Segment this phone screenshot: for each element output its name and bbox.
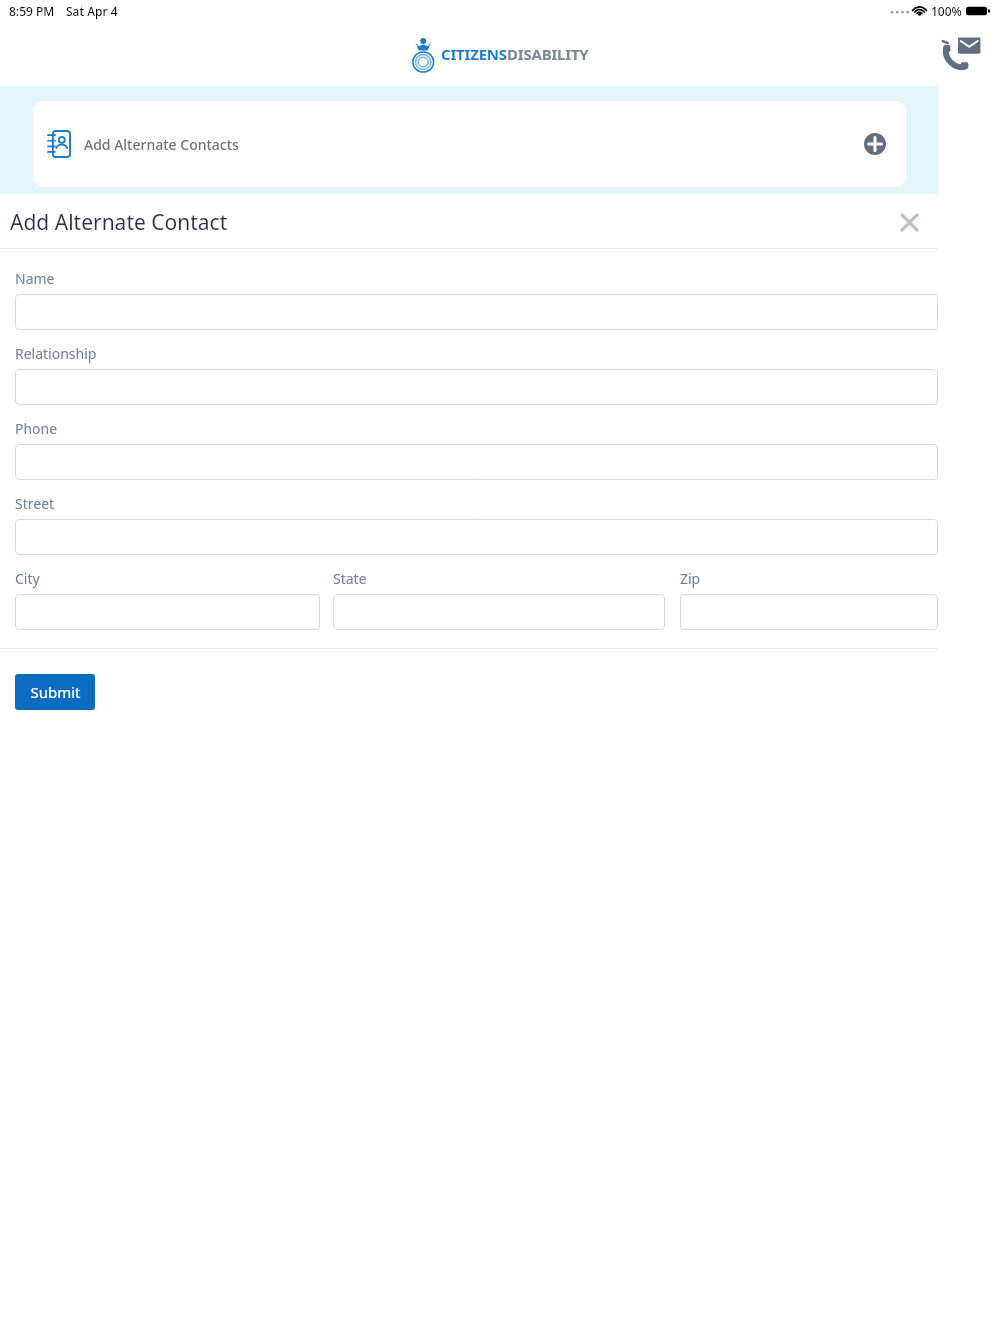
staticText: 8:59 PM: [9, 3, 55, 19]
button[interactable]: [15, 369, 938, 405]
staticText: Zip: [680, 569, 701, 588]
staticText: DISABILITY: [507, 44, 589, 64]
button[interactable]: Close: [892, 205, 926, 239]
button[interactable]: [15, 444, 938, 480]
staticText: Sat Apr 4: [66, 3, 118, 19]
staticText: Add Alternate Contact: [10, 208, 228, 237]
button[interactable]: Contact us: [938, 30, 986, 78]
staticText: Submit: [30, 682, 81, 702]
staticText: CITIZENS: [441, 44, 507, 64]
staticText: State: [333, 569, 367, 588]
button[interactable]: Add alternate contact: [858, 127, 892, 161]
staticText: Phone: [15, 419, 58, 438]
staticText: 100%: [931, 3, 962, 19]
button[interactable]: [15, 594, 320, 630]
staticText: Street: [15, 494, 55, 513]
button[interactable]: [15, 519, 938, 555]
button[interactable]: Add Alternate Contacts: [32, 100, 908, 188]
button[interactable]: Submit: [15, 674, 95, 710]
staticText: Add Alternate Contacts: [84, 135, 239, 154]
staticText: Relationship: [15, 344, 97, 363]
button[interactable]: [15, 294, 938, 330]
staticText: Name: [15, 269, 55, 288]
button[interactable]: [333, 594, 665, 630]
button[interactable]: [680, 594, 938, 630]
staticText: City: [15, 569, 40, 588]
